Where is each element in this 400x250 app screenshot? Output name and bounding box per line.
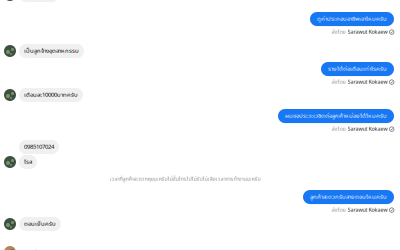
- staticText: ส่งโดย: [331, 206, 345, 214]
- button[interactable]: ตอนเย็นครับ: [0, 217, 400, 231]
- staticText: ส่งโดย: [331, 78, 345, 86]
- button[interactable]: ผมขอประวะเวชิดต่อลูกค้าหน่อยได้ไหมครับ: [0, 109, 394, 123]
- button[interactable]: 0985107024: [0, 140, 400, 154]
- staticText: Sarawut Kokaew: [347, 28, 387, 36]
- staticText: 0985107024: [24, 142, 54, 152]
- button[interactable]: เป็นลูกจ้างอุตสาหกรรม: [0, 44, 400, 58]
- button[interactable]: เดือนละ10000บาทครับ: [0, 88, 400, 102]
- staticText: เป็นลูกจ้างอุตสาหกรรม: [24, 46, 79, 56]
- staticText: Sarawut Kokaew: [347, 206, 387, 214]
- staticText: โรส: [24, 157, 32, 167]
- staticText: ผมขอประวะเวชิดต่อลูกค้าหน่อยได้ไหมครับ: [285, 111, 387, 121]
- staticText: ส่งโดย: [331, 125, 345, 133]
- button[interactable]: โรส: [0, 155, 400, 169]
- staticText: Sarawut Kokaew: [347, 125, 387, 133]
- staticText: Sarawut Kokaew: [347, 78, 387, 86]
- staticText: ดูค่าประกอบอาชีพเอาไหมครับ: [317, 14, 387, 24]
- staticText: ลูกค้าสะดวกรับสายตอนไหนครับ: [310, 192, 387, 202]
- staticText: รายได้ต่อเดือนเท่าไรครับ: [328, 64, 387, 74]
- staticText: ตอนเย็นครับ: [24, 219, 56, 229]
- button[interactable]: รายได้ต่อเดือนเท่าไรครับ: [0, 62, 394, 76]
- staticText: กรุงศรีอิน: [20, 247, 44, 250]
- button[interactable]: ดูค่าประกอบอาชีพเอาไหมครับ: [0, 12, 394, 26]
- button[interactable]: ลูกค้าสะดวกรับสายตอนไหนครับ: [0, 190, 394, 204]
- staticText: ส่งโดย: [331, 28, 345, 36]
- staticText: เดือนละ10000บาทครับ: [24, 90, 78, 100]
- staticText: เวลาที่ลูกค้าสะดวกคุยนะครับไม่งั้นโทรไปไ…: [109, 175, 260, 183]
